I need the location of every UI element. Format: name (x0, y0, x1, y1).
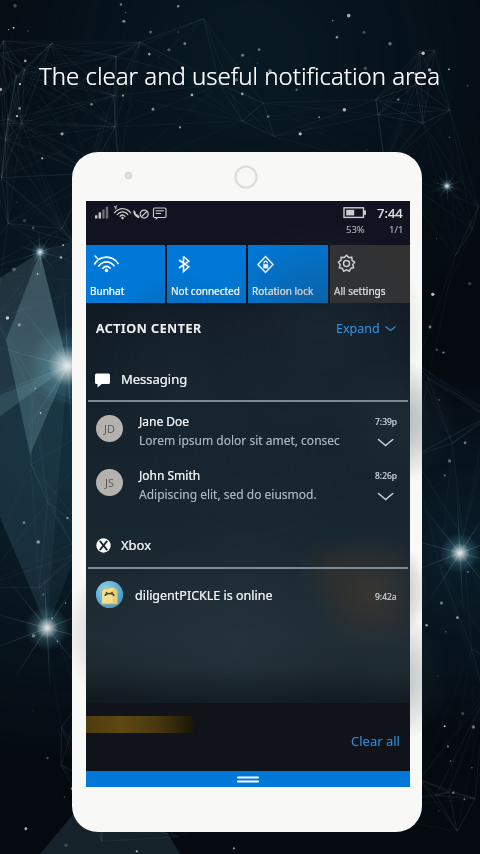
staticText: The clear and useful notification area (39, 59, 441, 92)
staticText: Jane Doe (139, 413, 190, 429)
staticText: 7:39p (375, 416, 398, 428)
button[interactable]: Not connected (167, 245, 246, 303)
staticText: John Smith (139, 467, 201, 483)
staticText: Messaging (121, 370, 188, 388)
button[interactable]: Bunhat (86, 245, 165, 303)
button[interactable]: Clear all (351, 732, 400, 750)
staticText: JD (104, 421, 116, 436)
button[interactable]: Xbox (86, 531, 410, 559)
staticText: JS (105, 475, 115, 490)
staticText: Adipiscing elit, sed do eiusmod. (139, 486, 317, 502)
staticText: Expand (336, 320, 380, 337)
staticText: 9:42a (375, 591, 397, 603)
staticText: Xbox (121, 536, 152, 554)
staticText: Lorem ipsum dolor sit amet, consec (139, 432, 340, 448)
staticText: 53% (346, 223, 365, 236)
staticText: Rotation lock (252, 284, 314, 298)
button[interactable]: Expand notification (378, 492, 396, 502)
staticText: 7:44 (377, 204, 403, 222)
button[interactable]: Navigation (236, 775, 260, 783)
button[interactable]: Rotation lock (248, 245, 328, 303)
button[interactable]: Messaging (86, 365, 410, 393)
staticText: All settings (334, 284, 386, 298)
staticText: Bunhat (90, 284, 125, 298)
staticText: 1/1 (389, 223, 404, 236)
button[interactable]: All settings (330, 245, 410, 303)
button[interactable]: JS (86, 456, 410, 510)
staticText: diligentPICKLE is online (135, 587, 273, 604)
staticText: ACTION CENTER (96, 320, 202, 337)
button[interactable]: Expand notification (378, 438, 396, 448)
staticText: Not connected (171, 284, 240, 298)
button[interactable]: JD (86, 402, 410, 456)
button[interactable]: Expand (336, 320, 396, 337)
staticText: 8:26p (375, 470, 398, 482)
button[interactable]: diligentPICKLE is online (86, 574, 410, 618)
